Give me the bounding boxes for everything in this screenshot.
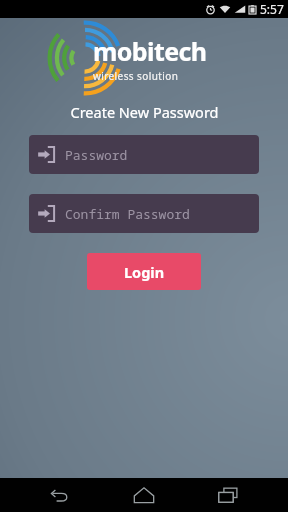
staticText: wireless solution — [93, 69, 179, 83]
staticText: Create New Password — [70, 102, 219, 122]
button[interactable]: Back — [38, 478, 84, 512]
button[interactable]: Password — [29, 135, 259, 174]
button[interactable]: Home — [121, 478, 167, 512]
button[interactable]: Recents — [205, 478, 251, 512]
staticText: Password — [65, 146, 128, 164]
button[interactable]: Login — [87, 253, 201, 290]
button[interactable]: Confirm Password — [29, 194, 259, 233]
staticText: mobitech — [93, 34, 207, 68]
staticText: Confirm Password — [65, 205, 190, 223]
staticText: 5:57 — [260, 1, 284, 17]
staticText: Login — [124, 262, 165, 282]
